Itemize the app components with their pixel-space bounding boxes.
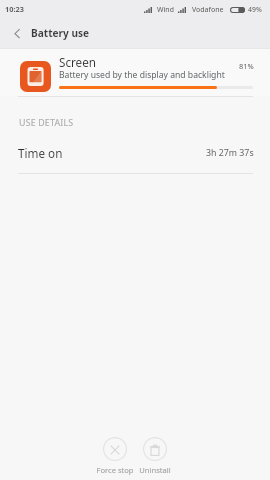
staticText: Force stop: [96, 465, 134, 475]
button[interactable]: Time on: [0, 136, 270, 169]
staticText: Vodafone: [192, 5, 224, 14]
staticText: USE DETAILS: [19, 117, 74, 129]
button[interactable]: Screen: [0, 49, 270, 96]
staticText: 49%: [248, 5, 262, 14]
staticText: Screen: [59, 54, 97, 70]
button[interactable]: Force stop: [95, 437, 135, 475]
button[interactable]: Uninstall: [135, 437, 175, 475]
staticText: Time on: [18, 145, 63, 161]
staticText: 10:23: [5, 4, 24, 14]
staticText: Battery use: [31, 26, 90, 40]
staticText: 3h 27m 37s: [206, 147, 254, 159]
staticText: 81%: [239, 61, 254, 71]
staticText: Wind: [157, 5, 174, 14]
staticText: Battery used by the display and backligh…: [59, 69, 225, 81]
staticText: Uninstall: [139, 465, 171, 475]
button[interactable]: Back: [0, 19, 30, 49]
